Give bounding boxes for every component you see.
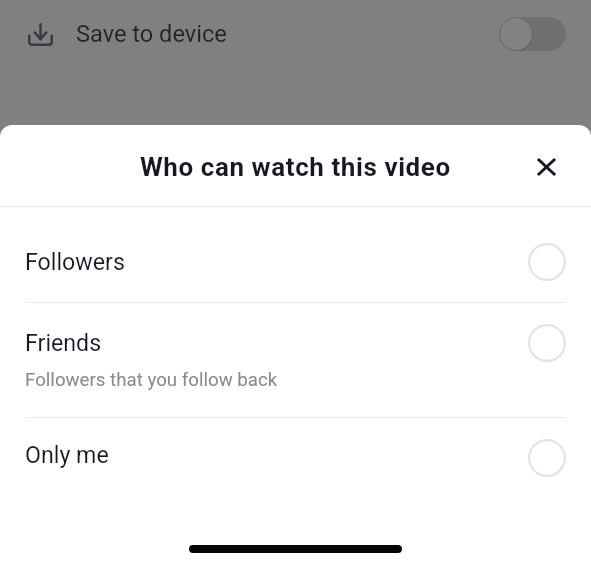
button[interactable]: Followers <box>0 206 591 302</box>
staticText: Who can watch this video <box>140 152 451 182</box>
button[interactable]: Save to device <box>0 0 591 68</box>
button[interactable]: Only me <box>0 417 591 513</box>
button[interactable]: Save to device toggle <box>499 17 566 51</box>
staticText: Followers that you follow back <box>25 369 278 391</box>
button[interactable]: Friends <box>0 302 591 417</box>
staticText: Friends <box>25 329 102 356</box>
staticText: Followers <box>25 248 125 275</box>
button[interactable]: Close <box>524 145 568 189</box>
staticText: Save to device <box>76 20 227 48</box>
staticText: Only me <box>25 441 109 468</box>
